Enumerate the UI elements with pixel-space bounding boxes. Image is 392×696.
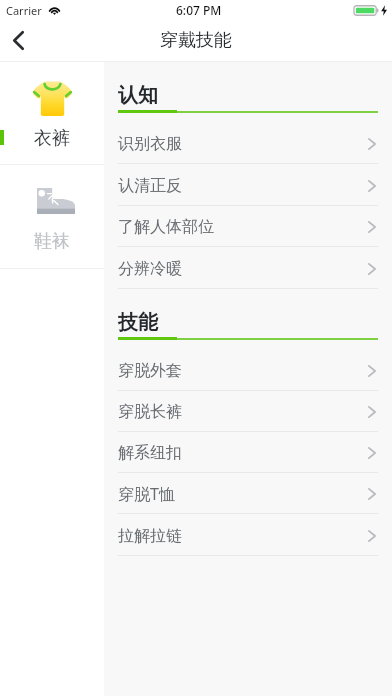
staticText: 解系纽扣 [118,443,182,463]
staticText: 穿脱外套 [118,361,182,381]
button[interactable]: 穿脱长裤 [104,390,392,432]
button[interactable]: Back [0,20,42,61]
button[interactable]: 穿脱外套 [104,349,392,391]
staticText: 认清正反 [118,176,182,196]
staticText: 6:07 PM [176,2,222,18]
staticText: 拉解拉链 [118,526,182,546]
staticText: Carrier [6,3,42,18]
button[interactable]: 分辨冷暖 [104,247,392,289]
button[interactable]: 了解人体部位 [104,205,392,247]
staticText: 穿脱T恤 [118,483,175,505]
button[interactable]: 认清正反 [104,164,392,206]
staticText: 识别衣服 [118,134,182,154]
staticText: 鞋袜 [34,230,70,253]
button[interactable]: 拉解拉链 [104,514,392,556]
staticText: 穿戴技能 [160,29,232,52]
button[interactable]: 衣裤 [0,62,104,164]
staticText: 了解人体部位 [118,217,214,237]
staticText: 认知 [118,83,158,108]
staticText: 衣裤 [34,127,70,150]
staticText: 穿脱长裤 [118,402,182,422]
button[interactable]: 解系纽扣 [104,431,392,473]
button[interactable]: 穿脱T恤 [104,472,392,514]
staticText: 分辨冷暖 [118,259,182,279]
button[interactable]: 识别衣服 [104,122,392,164]
staticText: 技能 [118,310,158,335]
button[interactable]: 鞋袜 [0,165,104,268]
